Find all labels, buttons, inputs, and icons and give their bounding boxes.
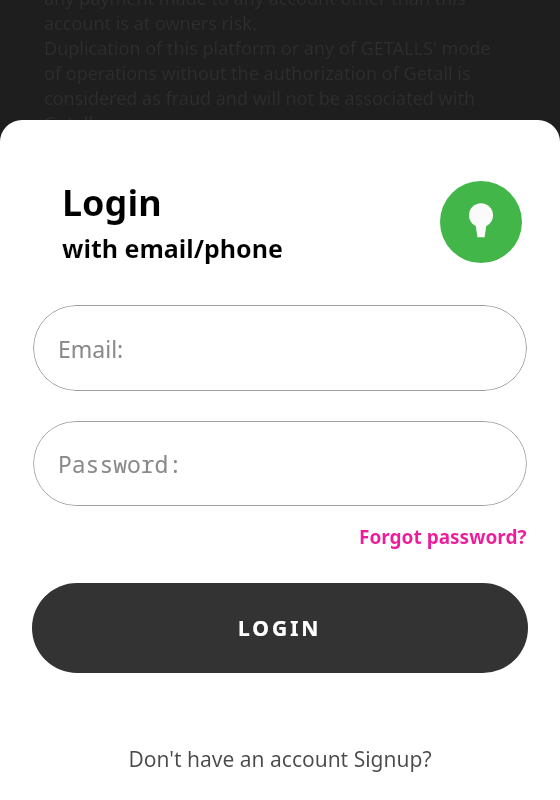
staticText: LOGIN [238, 614, 322, 643]
staticText: Duplication of this platform or any of G… [44, 36, 491, 61]
staticText: Getall. [44, 111, 98, 136]
staticText: of operations without the authorization … [44, 61, 471, 86]
button[interactable]: Secure login [440, 181, 522, 263]
staticText: Password: [58, 448, 183, 479]
staticText: considered as fraud and will not be asso… [44, 86, 476, 111]
button[interactable]: LOGIN [32, 583, 528, 673]
staticText: with email/phone [62, 231, 283, 265]
staticText: Login [62, 178, 162, 227]
staticText: account is at owners risk. [44, 11, 257, 36]
button[interactable]: Don't have an account Signup? [122, 741, 438, 778]
button[interactable]: Email: [33, 305, 527, 391]
staticText: Forgot password? [359, 524, 527, 550]
button[interactable]: Forgot password? [357, 521, 529, 553]
staticText: any payment made to any account other th… [44, 0, 466, 11]
staticText: Email: [58, 333, 124, 364]
staticText: Don't have an account Signup? [128, 745, 432, 774]
button[interactable]: Password: [33, 421, 527, 506]
